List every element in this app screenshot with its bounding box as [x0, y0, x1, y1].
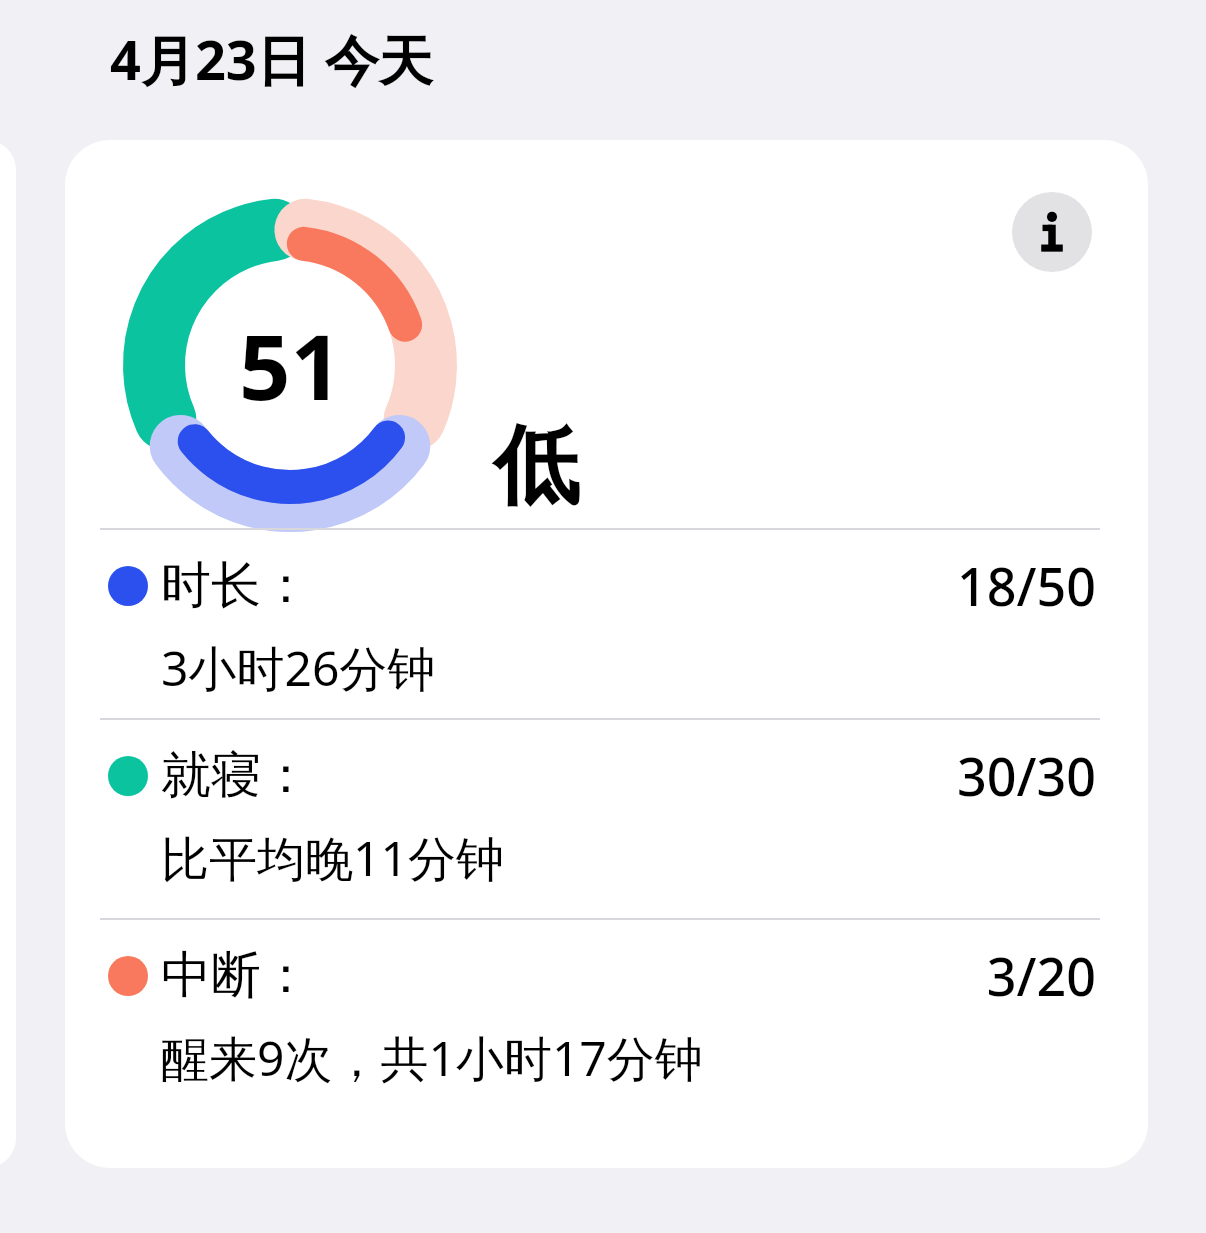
staticText: 30/30	[957, 740, 1096, 811]
button[interactable]: 就寝：	[100, 740, 1100, 908]
staticText: 醒来9次，共1小时17分钟	[161, 1025, 703, 1091]
button[interactable]: 时长：	[100, 550, 1100, 718]
staticText: 就寝：	[161, 744, 311, 807]
staticText: 比平均晚11分钟	[161, 825, 504, 891]
staticText: 3小时26分钟	[161, 635, 436, 701]
staticText: 18/50	[957, 550, 1096, 621]
button[interactable]: 中断：	[100, 940, 1100, 1108]
staticText: 中断：	[161, 944, 311, 1007]
staticText: 低	[493, 412, 579, 520]
staticText: 时长：	[161, 554, 311, 617]
staticText: 51	[239, 304, 342, 427]
staticText: 3/20	[986, 940, 1096, 1011]
button[interactable]: Information	[1012, 192, 1092, 272]
staticText: 4月23日 今天	[110, 22, 433, 96]
